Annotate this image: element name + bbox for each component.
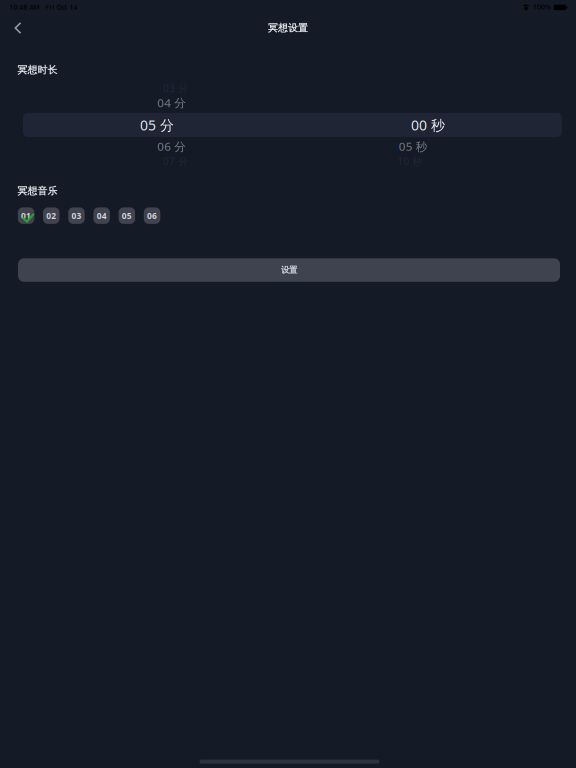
staticText: 02	[46, 210, 56, 221]
button[interactable]: Back	[2, 13, 34, 43]
staticText: 10 秒	[397, 154, 422, 168]
staticText: 00 秒	[411, 115, 445, 135]
staticText: 01	[21, 210, 31, 221]
staticText: 设置	[281, 265, 297, 275]
staticText: 冥想音乐	[17, 185, 57, 197]
staticText: 04 分	[157, 95, 186, 111]
staticText: 06 分	[157, 138, 186, 154]
staticText: 05	[122, 210, 132, 221]
staticText: 冥想时长	[17, 64, 57, 76]
staticText: 冥想设置	[268, 22, 308, 34]
button[interactable]: 设置	[18, 258, 560, 282]
staticText: 06	[147, 210, 157, 221]
staticText: 05 秒	[399, 138, 428, 154]
button[interactable]: 03	[68, 207, 85, 224]
button[interactable]: 01	[18, 207, 34, 224]
button[interactable]: 06	[144, 207, 160, 224]
staticText: 03	[71, 210, 81, 221]
staticText: 07 分	[163, 154, 188, 168]
staticText: 04	[97, 210, 107, 221]
button[interactable]: 05	[119, 207, 135, 224]
staticText: 10:48 AM Fri Oct 14	[10, 3, 78, 12]
button[interactable]: 02	[43, 207, 59, 224]
button[interactable]: 04	[93, 207, 110, 224]
staticText: 03 分	[163, 81, 188, 95]
staticText: 05 分	[140, 115, 174, 135]
staticText: 100%	[533, 2, 551, 12]
